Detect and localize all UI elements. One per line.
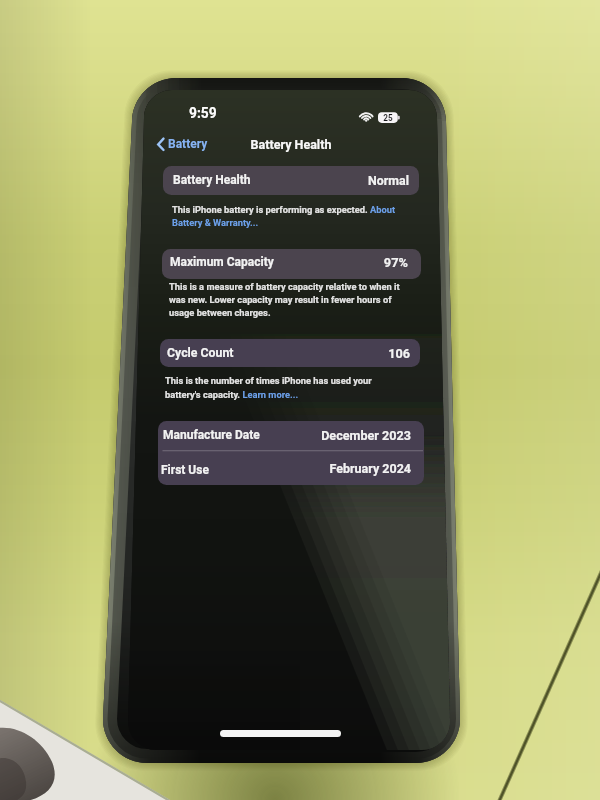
staticText: This is the number of times iPhone has u… [165,375,372,386]
staticText: This iPhone battery is performing as exp… [172,204,396,215]
staticText: Battery & Warranty... [172,217,259,228]
staticText: February 2024 [241,461,411,476]
staticText: battery's capacity. Learn more... [165,389,299,400]
staticText: Maximum Capacity [170,255,274,269]
staticText: was new. Lower capacity may result in fe… [169,294,392,305]
staticText: Manufacture Date [163,428,260,442]
staticText: 106 [240,346,410,361]
staticText: Battery Health [191,137,391,800]
button[interactable] [162,249,421,279]
staticText: Normal [239,173,409,188]
staticText: Battery [168,137,208,151]
button[interactable]: Battery & Warranty [171,215,257,229]
staticText: This is a measure of battery capacity re… [169,281,400,292]
button[interactable]: Battery [153,133,213,157]
staticText: 9:59 [189,105,217,121]
button[interactable] [160,339,420,367]
staticText: 25 [378,113,398,123]
staticText: Cycle Count [167,346,234,360]
button[interactable] [163,166,419,195]
button[interactable]: About Battery & Warranty [369,202,392,215]
staticText: usage between charges. [169,307,271,318]
staticText: First Use [161,463,209,477]
staticText: Battery Health [173,173,251,187]
staticText: 97% [238,255,408,270]
button[interactable]: Learn more about cycle count [213,388,300,402]
other: Wi-Fi [358,109,376,123]
staticText: December 2023 [241,428,411,443]
button[interactable] [158,421,424,485]
